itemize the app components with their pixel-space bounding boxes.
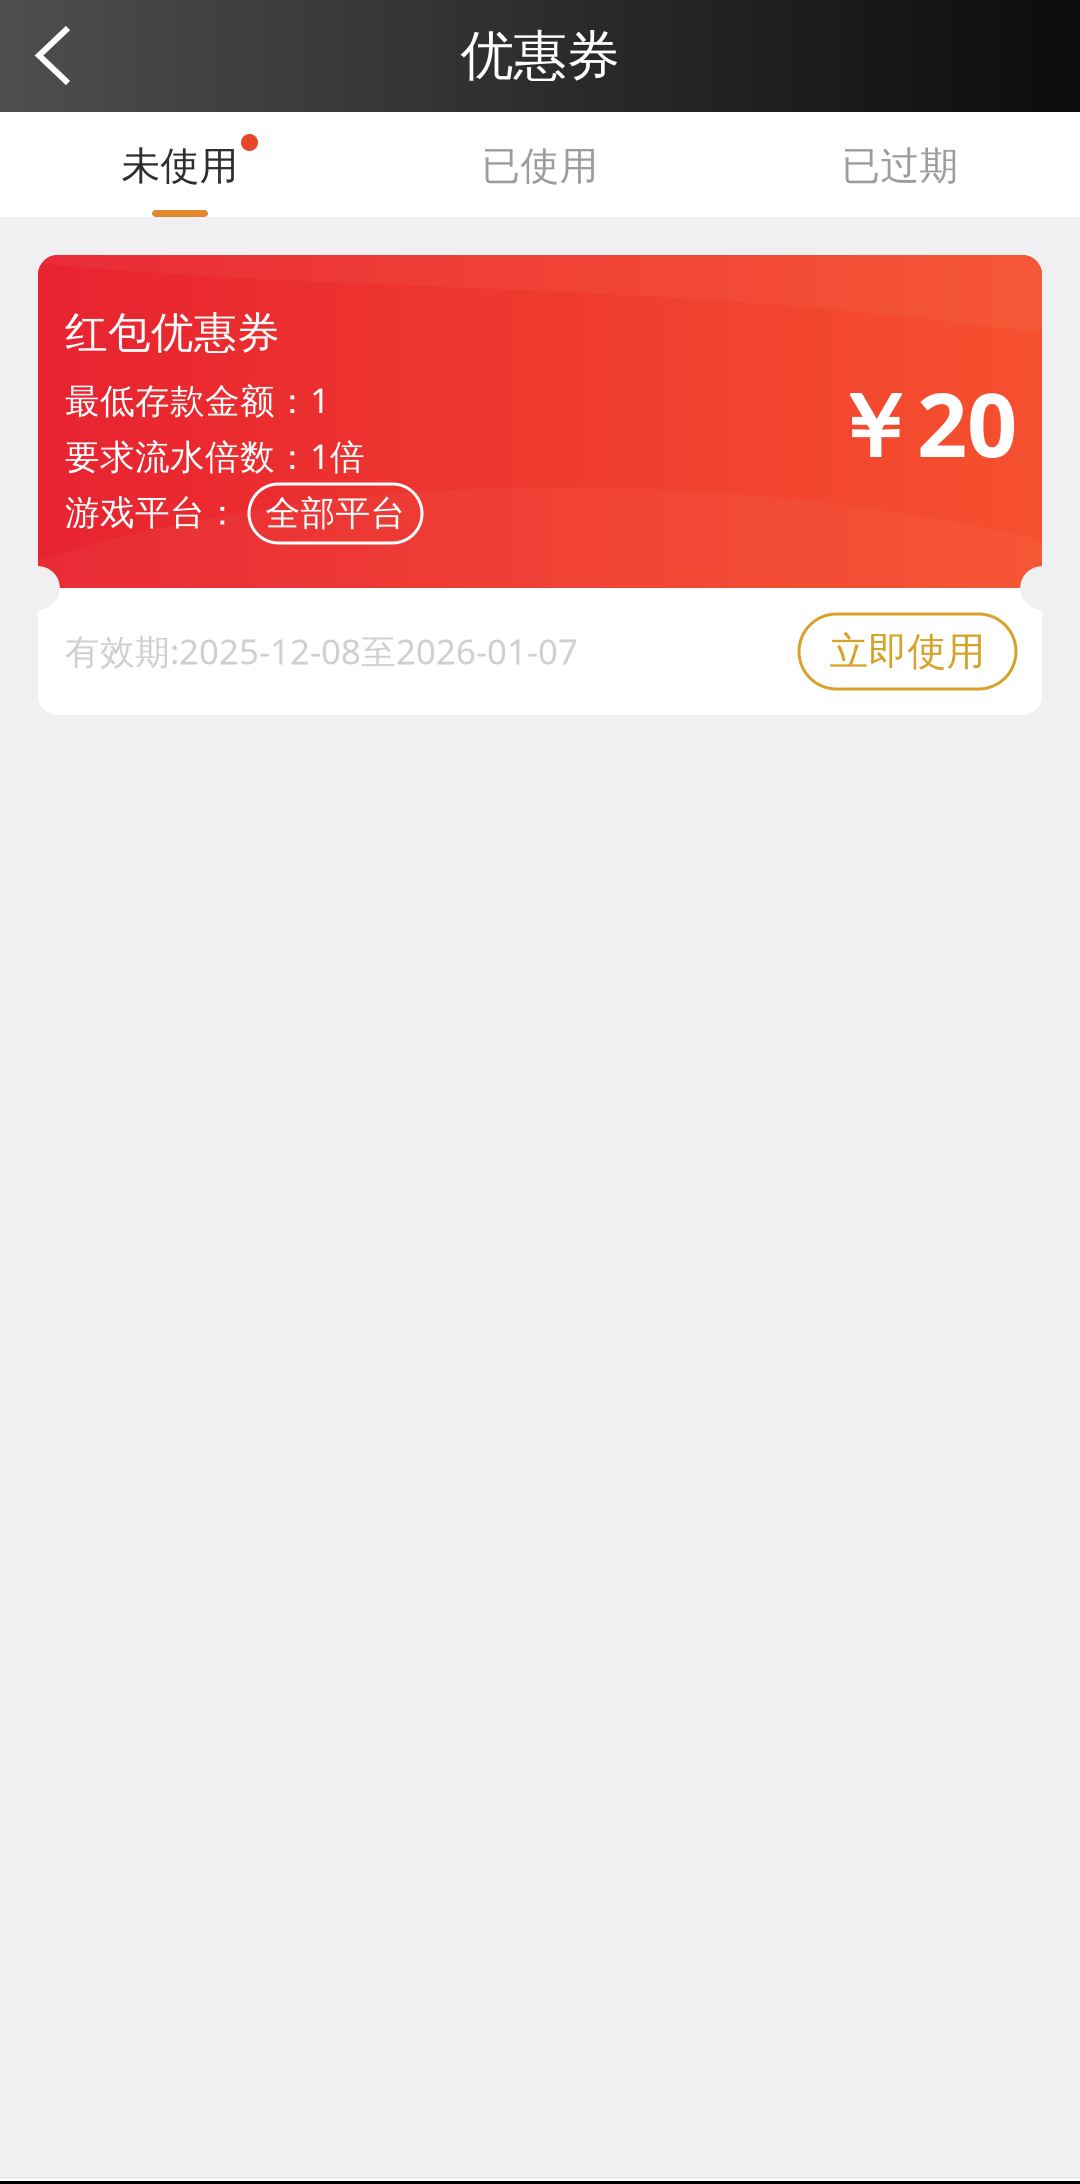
staticText: 立即使用 [829,628,985,675]
button[interactable]: 返回 [0,0,132,112]
staticText: 有效期:2025-12-08至2026-01-07 [65,628,578,674]
staticText: 要求流水倍数：1倍 [65,433,365,479]
staticText: 最低存款金额：1 [65,377,330,423]
button[interactable]: 已过期 [720,112,1080,217]
button[interactable]: 未使用 [0,112,360,217]
staticText: ￥20 [829,364,1017,482]
button[interactable]: 立即使用 [799,614,1016,689]
staticText: 未使用 [121,142,238,190]
button[interactable]: 已使用 [360,112,720,217]
staticText: 优惠券 [460,23,619,89]
staticText: 已过期 [841,142,958,190]
staticText: 已使用 [481,142,598,190]
staticText: 全部平台 [265,492,405,535]
staticText: 游戏平台： [65,492,240,534]
staticText: 红包优惠券 [65,307,280,359]
